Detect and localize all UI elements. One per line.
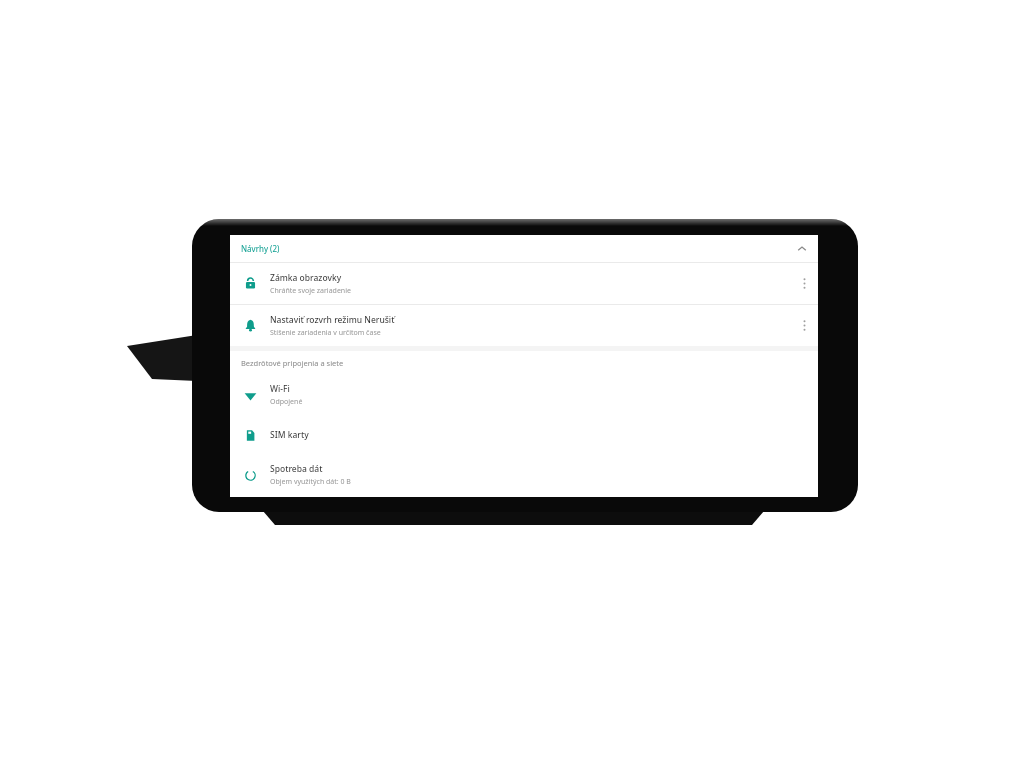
button[interactable]: Collapse suggestions: [794, 241, 810, 257]
staticText: Chráňte svoje zariadenie: [270, 286, 351, 296]
staticText: SIM karty: [270, 429, 309, 441]
button[interactable]: SIM karty: [230, 415, 818, 455]
button[interactable]: Spotreba dát: [230, 455, 818, 495]
staticText: Objem využitých dát: 0 B: [270, 477, 351, 487]
button[interactable]: Wi-Fi: [230, 375, 818, 415]
staticText: Spotreba dát: [270, 463, 323, 475]
button[interactable]: Návrhy (2): [230, 235, 818, 262]
staticText: Odpojené: [270, 397, 303, 407]
button[interactable]: Nastaviť rozvrh režimu Nerušiť: [230, 305, 818, 346]
staticText: Stíšenie zariadenia v určitom čase: [270, 328, 381, 338]
button[interactable]: More options: [790, 263, 818, 304]
button[interactable]: Zámka obrazovky: [230, 263, 818, 304]
staticText: Wi-Fi: [270, 383, 290, 395]
staticText: Bezdrôtové pripojenia a siete: [241, 358, 344, 368]
staticText: Návrhy (2): [241, 243, 280, 254]
staticText: Zámka obrazovky: [270, 272, 342, 284]
button[interactable]: More options: [790, 305, 818, 346]
staticText: Nastaviť rozvrh režimu Nerušiť: [270, 314, 395, 326]
